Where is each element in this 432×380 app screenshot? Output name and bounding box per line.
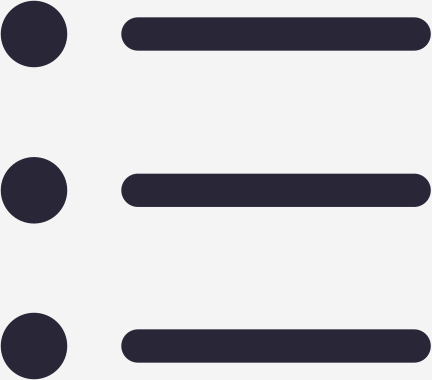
button[interactable]: List item 3: [0, 313, 432, 379]
button[interactable]: List item 1: [0, 1, 432, 67]
button[interactable]: List item 2: [0, 157, 432, 224]
